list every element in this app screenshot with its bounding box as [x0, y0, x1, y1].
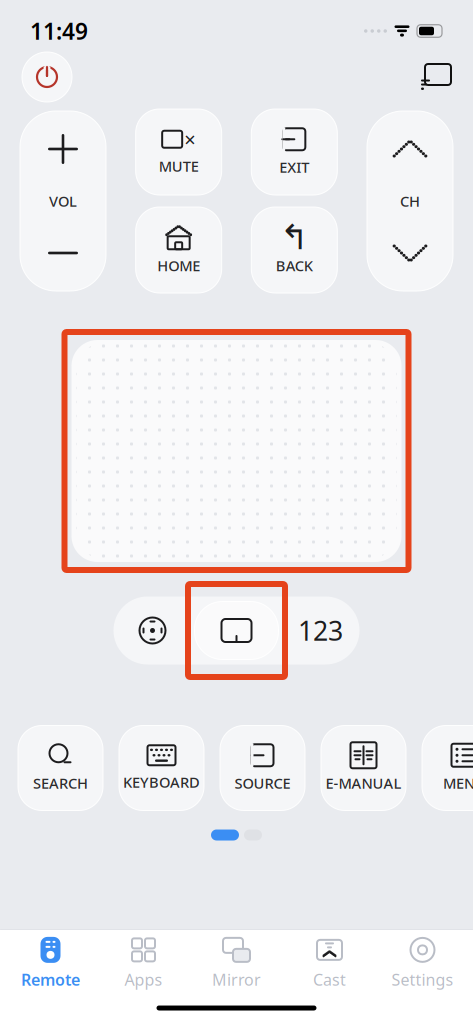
staticText: Cast [313, 969, 346, 990]
staticText: E-MANUAL [325, 773, 401, 793]
staticText: 11:49 [30, 16, 88, 46]
button[interactable]: HOME [136, 207, 222, 293]
button[interactable]: ↰ [251, 207, 337, 293]
button[interactable]: E-MANUAL [321, 725, 406, 810]
button[interactable]: SEARCH [18, 725, 103, 810]
button[interactable]: KEYBOARD [119, 725, 204, 810]
staticText: × [184, 126, 195, 153]
button[interactable] [367, 215, 453, 291]
staticText: CH [400, 191, 420, 211]
button[interactable]: Trackpad mode [188, 584, 285, 677]
button[interactable]: 123 [281, 602, 359, 658]
staticText: Mirror [212, 969, 261, 990]
staticText: HOME [157, 256, 200, 275]
button[interactable]: Trackpad [64, 332, 408, 570]
button[interactable]: EXIT [251, 109, 337, 195]
staticText: BACK [276, 256, 313, 275]
staticText: MENU [443, 773, 473, 793]
button[interactable]: D-pad mode [113, 602, 191, 658]
staticText: SOURCE [234, 773, 290, 793]
button[interactable]: Cast [421, 64, 451, 90]
button[interactable] [367, 111, 453, 187]
staticText: KEYBOARD [123, 772, 200, 792]
button[interactable]: Apps [97, 928, 190, 994]
button[interactable]: Power [22, 52, 72, 102]
staticText: Remote [21, 969, 80, 990]
staticText: Settings [391, 969, 453, 990]
button[interactable]: Mirror [190, 928, 283, 994]
staticText: EXIT [279, 157, 309, 177]
staticText: MUTE [159, 156, 199, 176]
button[interactable]: Remote [4, 928, 97, 994]
staticText: SEARCH [33, 773, 88, 793]
button[interactable]: SOURCE [220, 725, 305, 810]
staticText: Apps [124, 969, 162, 990]
button[interactable] [20, 215, 106, 291]
staticText: ↰ [280, 218, 309, 257]
staticText: VOL [49, 191, 77, 211]
button[interactable] [20, 111, 106, 187]
button[interactable]: Settings [376, 928, 469, 994]
button[interactable]: × [136, 109, 222, 195]
button[interactable]: MENU [422, 725, 473, 810]
staticText: 123 [298, 613, 343, 648]
button[interactable]: Cast [283, 928, 376, 994]
